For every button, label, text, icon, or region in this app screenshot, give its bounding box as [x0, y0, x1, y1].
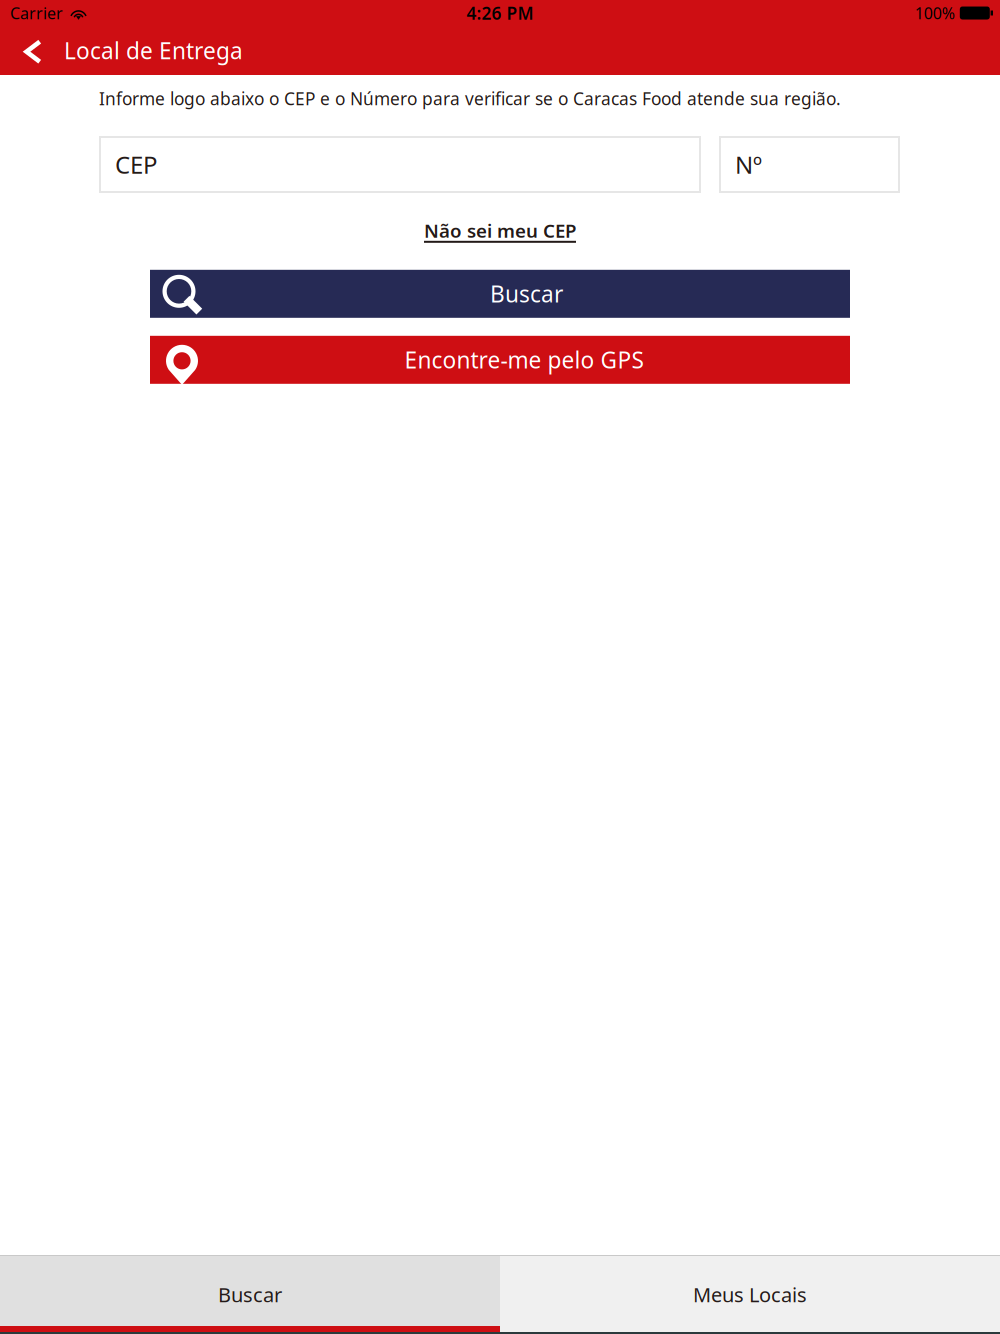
- button[interactable]: Buscar: [150, 270, 850, 318]
- staticText: Nº: [735, 149, 762, 180]
- staticText: Informe logo abaixo o CEP e o Número par…: [99, 87, 841, 110]
- button[interactable]: Nº: [720, 137, 899, 192]
- staticText: Carrier: [10, 2, 63, 24]
- staticText: Meus Locais: [693, 1281, 807, 1308]
- staticText: Não sei meu CEP: [424, 218, 576, 243]
- button[interactable]: Não sei meu CEP: [0, 218, 1000, 243]
- button[interactable]: Encontre-me pelo GPS: [150, 336, 850, 384]
- button[interactable]: Buscar: [0, 1255, 500, 1334]
- staticText: CEP: [115, 149, 158, 180]
- button[interactable]: Meus Locais: [500, 1255, 1000, 1334]
- button[interactable]: CEP: [100, 137, 700, 192]
- staticText: Encontre-me pelo GPS: [404, 345, 643, 375]
- staticText: Buscar: [218, 1281, 282, 1308]
- staticText: Local de Entrega: [64, 35, 243, 65]
- staticText: 4:26 PM: [466, 1, 533, 24]
- staticText: Buscar: [490, 279, 563, 309]
- staticText: 100%: [915, 2, 955, 24]
- button[interactable]: Back: [5, 26, 60, 75]
